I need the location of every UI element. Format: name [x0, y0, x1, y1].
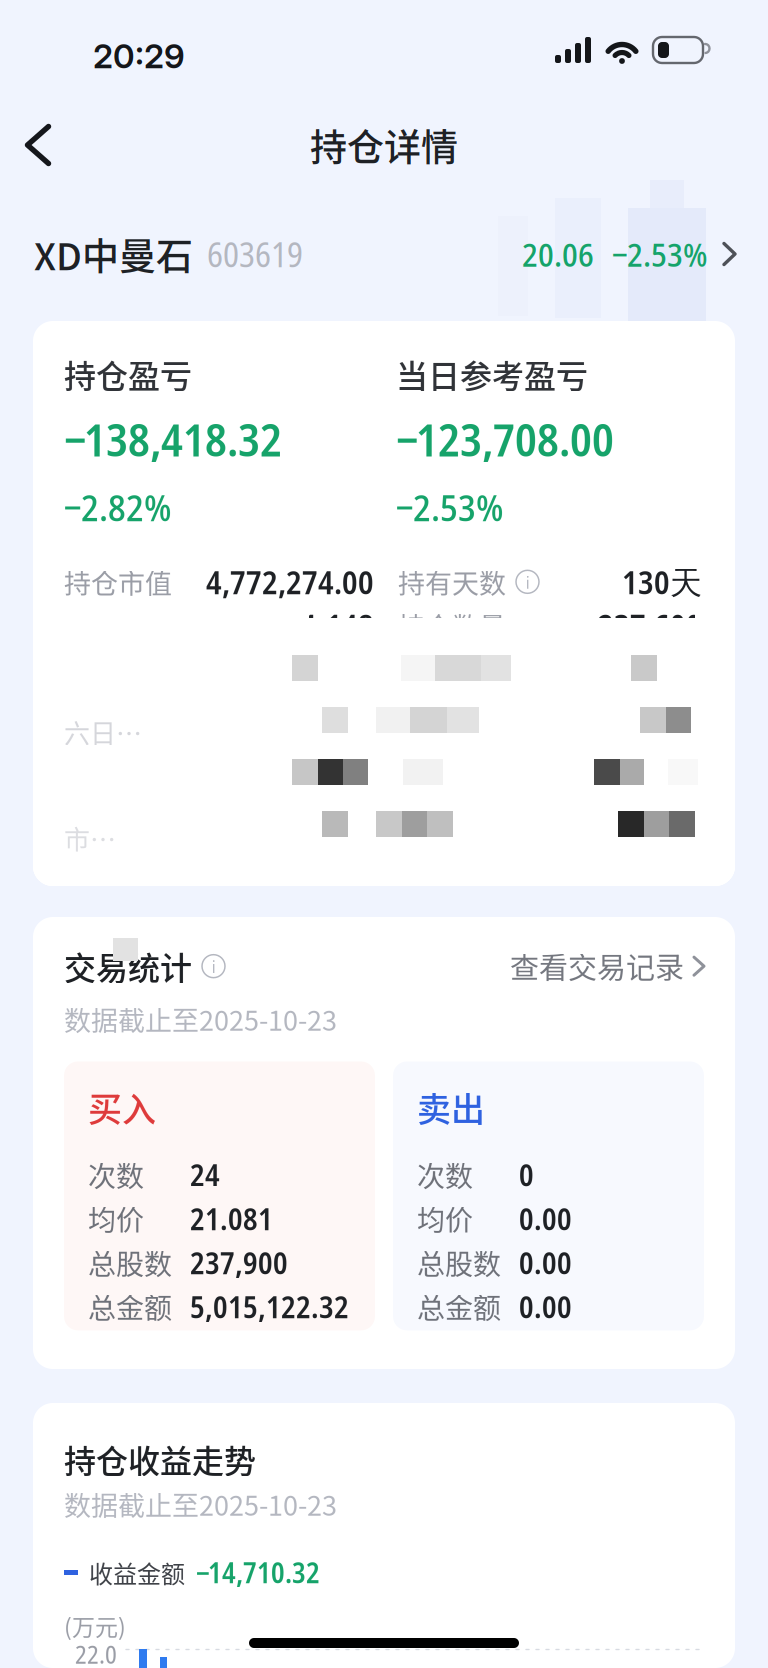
staticText: 均价: [88, 1198, 144, 1239]
staticText: 次数: [88, 1154, 144, 1195]
staticText: 21.081: [190, 1198, 273, 1239]
staticText: 卖出: [417, 1082, 485, 1132]
staticText: 持仓收益走势: [64, 1436, 256, 1482]
staticText: i: [211, 955, 215, 977]
staticText: 数据截止至2025-10-23: [64, 999, 337, 1038]
staticText: 查看交易记录: [510, 945, 684, 987]
staticText: 买入: [88, 1082, 156, 1132]
staticText: 总股数: [417, 1242, 501, 1283]
staticText: 次数: [417, 1154, 473, 1195]
staticText: −138,418.32: [64, 408, 282, 470]
staticText: 4,772,274.00: [206, 560, 374, 604]
staticText: XD中曼石: [34, 227, 193, 281]
staticText: 数据截止至2025-10-23: [64, 1484, 337, 1523]
button[interactable]: Back: [0, 102, 76, 188]
staticText: 均价: [417, 1198, 473, 1239]
staticText: 持仓盈亏: [64, 351, 192, 397]
staticText: 交易统计: [64, 943, 192, 989]
staticText: (万元): [64, 1609, 126, 1642]
staticText: 持仓市值: [64, 562, 172, 601]
staticText: 0.00: [519, 1286, 572, 1327]
staticText: 持仓详情: [310, 118, 458, 172]
staticText: −14,710.32: [196, 1553, 320, 1591]
staticText: 0.00: [519, 1242, 572, 1283]
staticText: 持有天数: [398, 562, 506, 601]
staticText: i: [525, 570, 529, 593]
staticText: 0: [519, 1154, 534, 1195]
staticText: −2.82%: [64, 482, 171, 532]
staticText: 237,900: [190, 1242, 288, 1283]
staticText: 22.0: [75, 1637, 117, 1668]
button[interactable]: XD中曼石: [0, 190, 768, 318]
button[interactable]: 查看交易记录: [510, 945, 704, 987]
staticText: 20:29: [93, 36, 185, 76]
staticText: 130天: [622, 560, 702, 604]
staticText: 持仓数量: [398, 606, 506, 645]
staticText: 0.00: [519, 1198, 572, 1239]
staticText: 总金额: [417, 1286, 501, 1327]
staticText: 5,015,122.32: [190, 1286, 349, 1327]
staticText: −2.53%: [612, 231, 708, 276]
staticText: −123,708.00: [396, 408, 614, 470]
staticText: 20.06: [522, 231, 594, 276]
staticText: 六日…: [64, 713, 142, 751]
staticText: 603619: [207, 231, 303, 277]
staticText: 21.148: [286, 604, 374, 647]
staticText: 24: [190, 1154, 220, 1195]
staticText: −2.53%: [396, 482, 503, 532]
staticText: 总金额: [88, 1286, 172, 1327]
staticText: 市…: [64, 819, 116, 857]
staticText: 当日参考盈亏: [396, 351, 588, 397]
staticText: 收益金额: [89, 1555, 185, 1590]
staticText: 237,600: [598, 604, 702, 647]
staticText: 总股数: [88, 1242, 172, 1283]
